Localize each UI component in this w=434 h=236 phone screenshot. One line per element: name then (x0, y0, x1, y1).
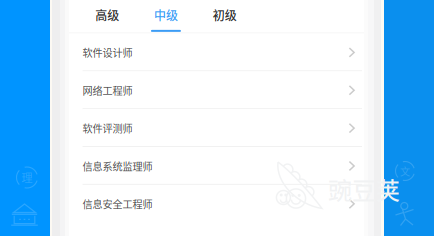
button[interactable]: 软件设计师 (69, 33, 364, 71)
staticText: 软件设计师 (83, 45, 133, 60)
button[interactable]: 中级 (137, 0, 195, 33)
button[interactable]: 初级 (195, 0, 254, 33)
staticText: 文 (400, 164, 410, 178)
staticText: 初级 (213, 6, 237, 24)
button[interactable]: 软件评测师 (69, 109, 364, 147)
button[interactable]: 网络工程师 (69, 71, 364, 109)
staticText: 豌豆荚 (328, 172, 400, 206)
staticText: 中级 (154, 6, 178, 24)
button[interactable]: 信息安全工程师 (69, 185, 364, 223)
staticText: 软件评测师 (83, 121, 133, 135)
button[interactable]: 信息系统监理师 (69, 147, 364, 185)
staticText: 网络工程师 (83, 83, 133, 98)
staticText: 理 (21, 169, 32, 185)
staticText: 高级 (95, 6, 119, 24)
button[interactable]: 高级 (78, 0, 137, 33)
staticText: 信息系统监理师 (83, 159, 153, 173)
staticText: 信息安全工程师 (83, 196, 153, 211)
